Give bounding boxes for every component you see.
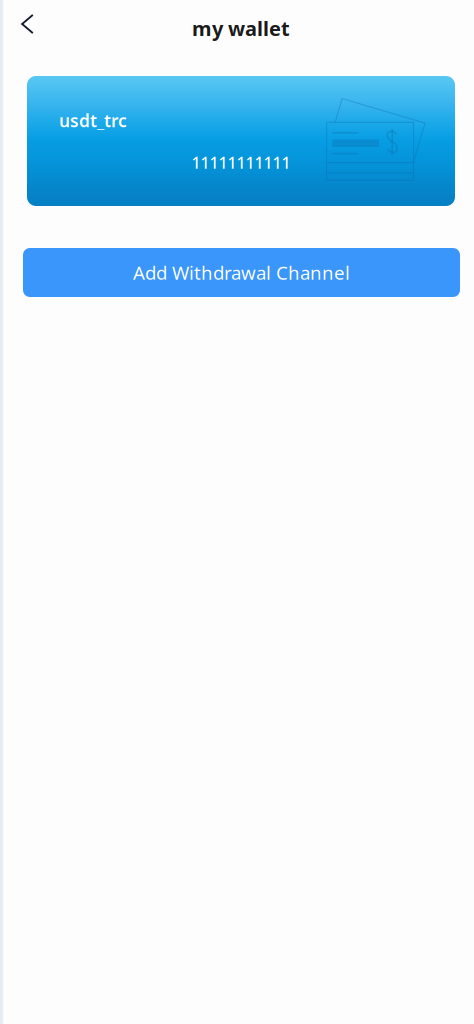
staticText: usdt_trc: [59, 109, 127, 132]
button[interactable]: Back: [12, 4, 56, 48]
staticText: my wallet: [192, 15, 290, 42]
staticText: 11111111111: [191, 152, 290, 173]
button[interactable]: Add Withdrawal Channel: [23, 248, 460, 297]
staticText: Add Withdrawal Channel: [133, 260, 350, 285]
